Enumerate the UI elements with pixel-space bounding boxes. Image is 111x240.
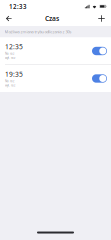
staticText: wył. raz (5, 56, 15, 60)
staticText: Na raz (5, 79, 14, 83)
staticText: Możliwa zmiana trybu odliczania z 30s (4, 29, 71, 34)
button[interactable]: Dodaj (94, 13, 109, 24)
button[interactable]: Wstecz (1, 13, 16, 24)
staticText: 19:35 (5, 70, 23, 79)
staticText: 12:35 (5, 42, 23, 51)
staticText: Czas (45, 14, 59, 23)
staticText: wył. raz (5, 83, 15, 87)
staticText: Na raz (5, 52, 14, 55)
staticText: 12:33 (9, 2, 27, 11)
button[interactable]: 12:35 (0, 37, 111, 64)
button[interactable]: 19:35 (0, 65, 111, 92)
